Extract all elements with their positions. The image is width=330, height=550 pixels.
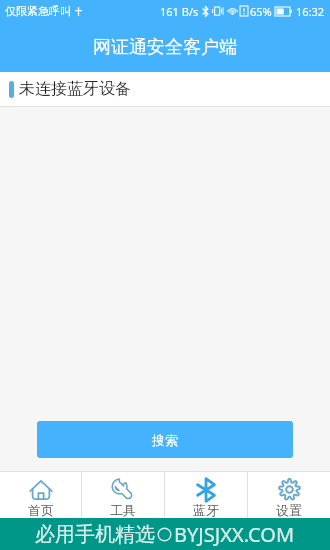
staticText: 必用手机精选 xyxy=(35,522,155,547)
staticText: 16:32 xyxy=(296,4,325,19)
staticText: 搜索 xyxy=(152,432,178,448)
button[interactable]: 蓝牙 xyxy=(165,472,247,518)
button[interactable]: 搜索 xyxy=(37,421,293,458)
staticText: 蓝牙 xyxy=(193,502,219,518)
staticText: 网证通安全客户端 xyxy=(93,36,237,59)
staticText: 161 B/s xyxy=(160,4,199,19)
staticText: 设置 xyxy=(276,502,302,518)
staticText: 仅限紧急呼叫 xyxy=(5,4,71,18)
button[interactable]: 首页 xyxy=(0,472,81,518)
button[interactable]: 设置 xyxy=(248,472,330,518)
staticText: 首页 xyxy=(28,502,54,518)
button[interactable]: 工具 xyxy=(82,472,164,518)
other: 蓝牙 xyxy=(194,478,218,502)
other: 设置 xyxy=(278,478,301,501)
other: 首页 xyxy=(29,478,53,502)
staticText: 未连接蓝牙设备 xyxy=(19,79,131,99)
staticText: BYJSJXX.COM xyxy=(174,521,295,548)
staticText: 65% xyxy=(250,4,272,19)
other: 工具 xyxy=(112,478,135,501)
staticText: 工具 xyxy=(110,502,136,518)
